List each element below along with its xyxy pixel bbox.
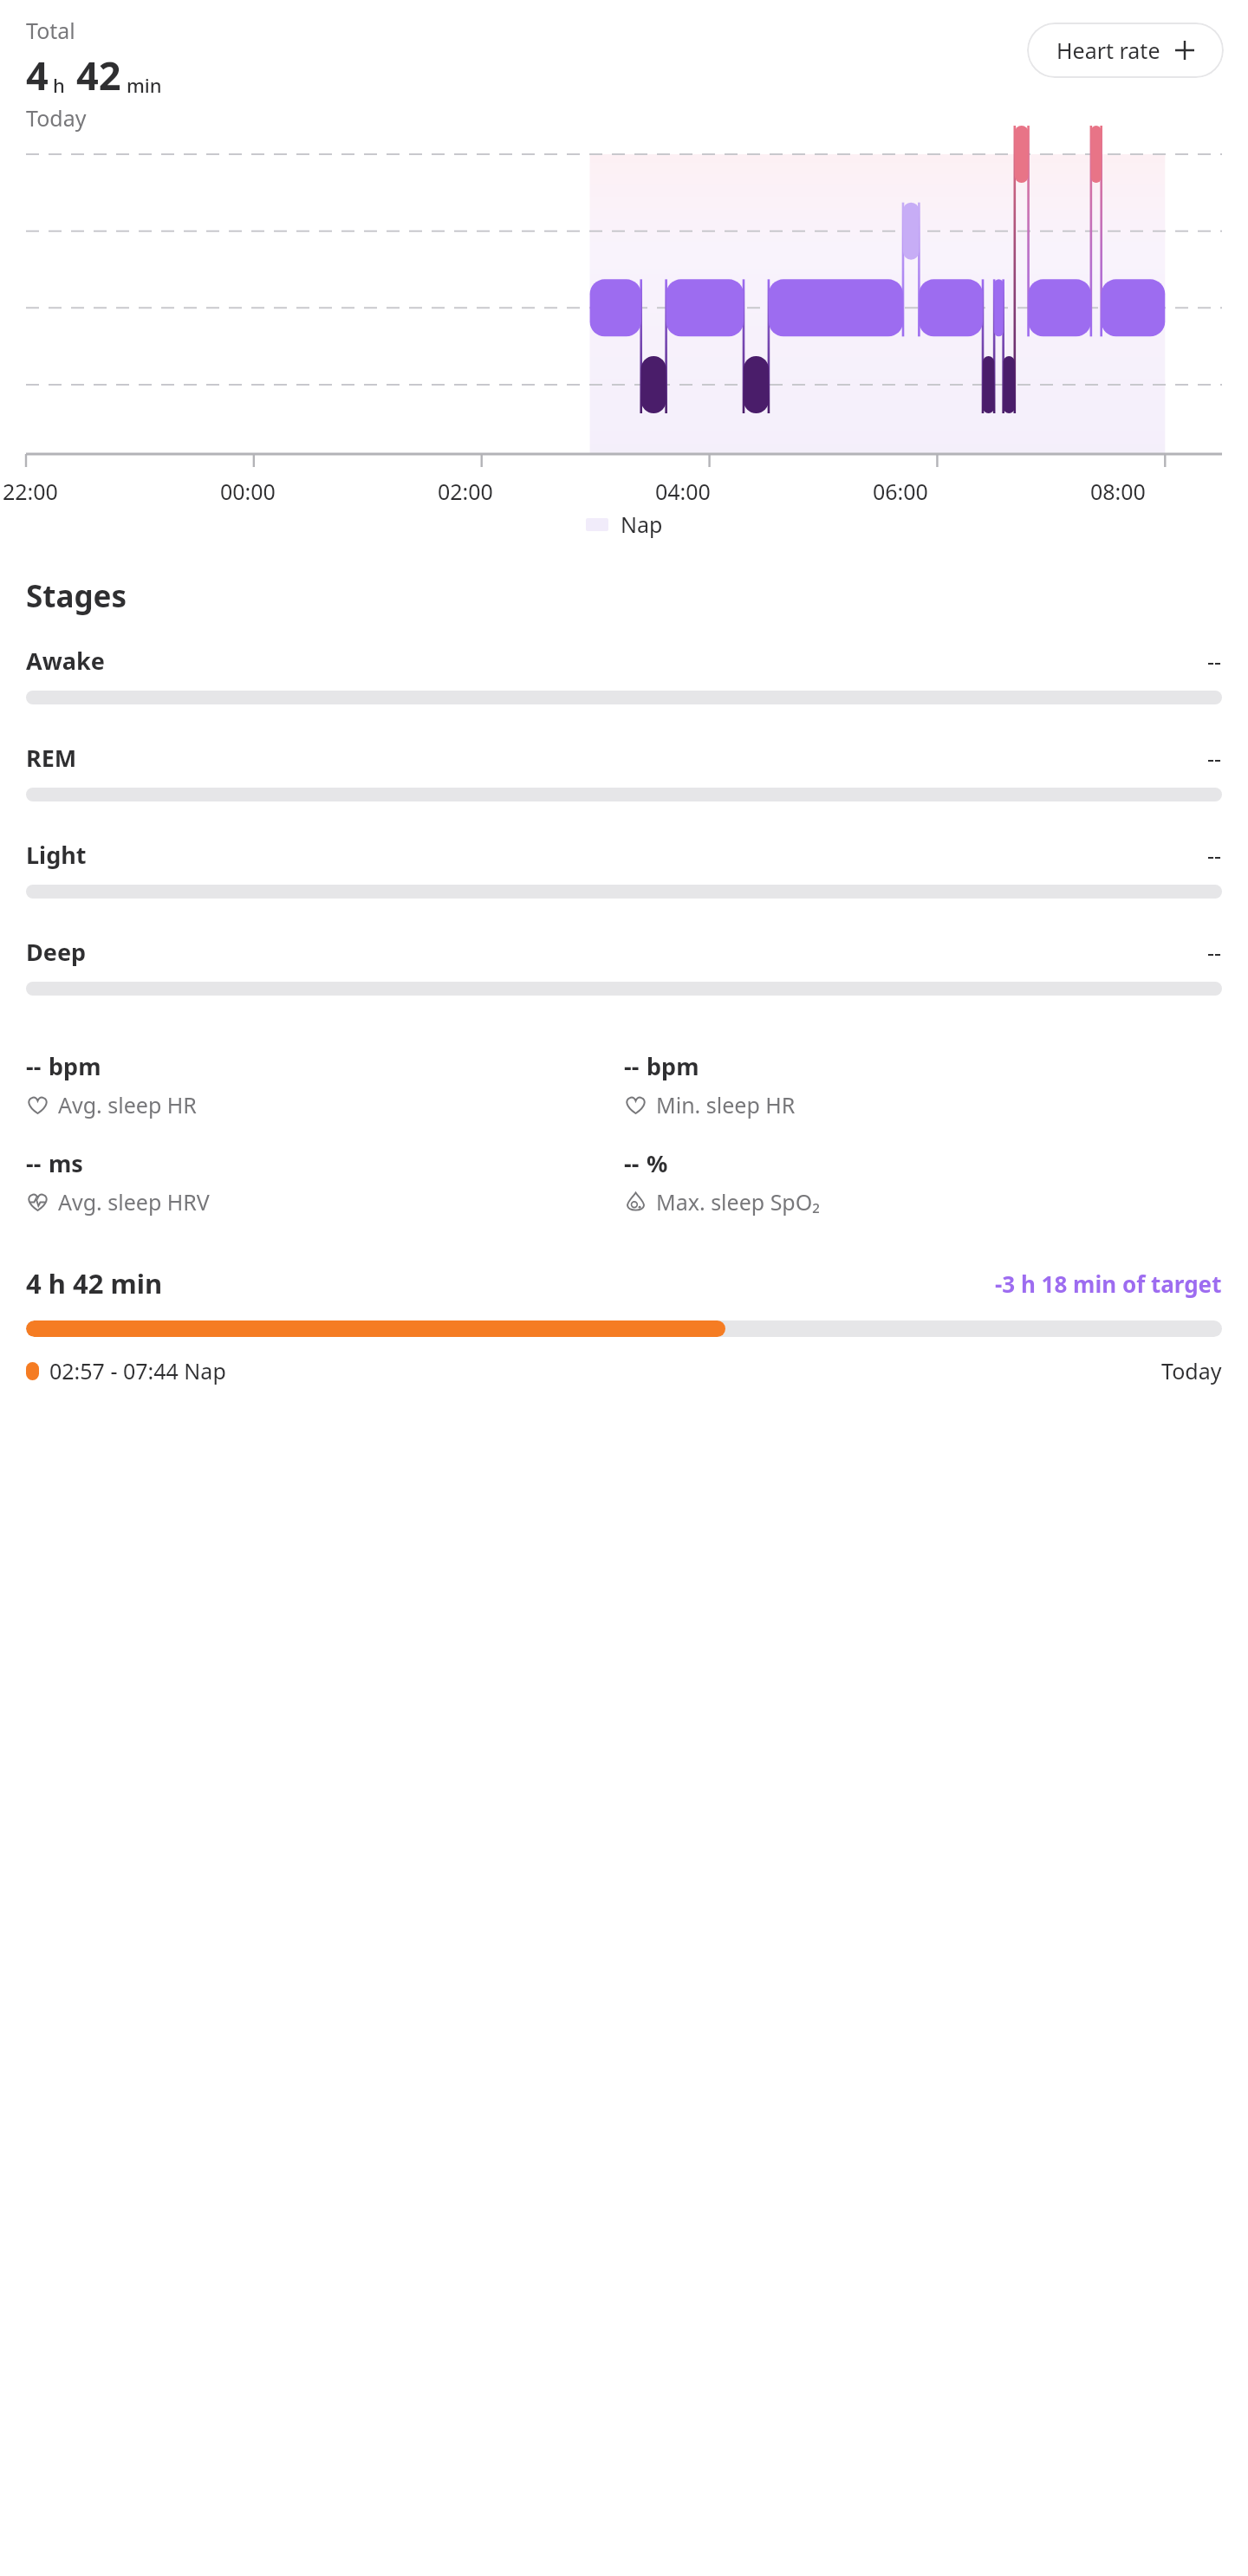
staticText: Min. sleep HR <box>656 1090 796 1119</box>
staticText: 00:00 <box>220 477 276 506</box>
staticText: 22:00 <box>3 477 58 506</box>
staticText: Light <box>26 839 1207 871</box>
staticText: bpm <box>647 1050 699 1082</box>
staticText: -- <box>1207 938 1222 967</box>
staticText: Today <box>1161 1356 1222 1385</box>
button[interactable]: Heart rate <box>1027 23 1224 78</box>
staticText: 02:57 - 07:44 Nap <box>49 1356 1161 1385</box>
button[interactable]: Light <box>0 839 1248 936</box>
button[interactable]: -- <box>26 1050 624 1119</box>
staticText: Deep <box>26 936 1207 968</box>
staticText: 42 <box>76 49 121 101</box>
staticText: min <box>127 72 162 98</box>
button[interactable]: -- <box>26 1147 624 1217</box>
staticText: h <box>53 72 65 98</box>
button[interactable]: -- <box>624 1050 1222 1119</box>
staticText: -- <box>26 1147 42 1179</box>
button[interactable]: Awake <box>0 645 1248 742</box>
staticText: Max. sleep SpO₂ <box>656 1187 821 1217</box>
staticText: -- <box>26 1050 42 1082</box>
staticText: 4 <box>26 49 49 101</box>
staticText: 08:00 <box>1090 477 1146 506</box>
staticText: Total <box>26 16 75 45</box>
staticText: -- <box>624 1147 640 1179</box>
staticText: -- <box>1207 646 1222 676</box>
staticText: Stages <box>26 575 127 617</box>
staticText: -- <box>1207 840 1222 870</box>
staticText: -- <box>624 1050 640 1082</box>
staticText: Avg. sleep HRV <box>58 1187 210 1217</box>
staticText: -- <box>1207 743 1222 773</box>
staticText: Awake <box>26 645 1207 677</box>
staticText: bpm <box>49 1050 101 1082</box>
button[interactable]: REM <box>0 742 1248 839</box>
other: Add heart rate <box>1175 41 1194 60</box>
staticText: Today <box>26 103 87 133</box>
staticText: REM <box>26 742 1207 774</box>
button[interactable]: -- <box>624 1147 1222 1217</box>
staticText: Nap <box>621 509 663 539</box>
staticText: 04:00 <box>655 477 711 506</box>
staticText: 02:00 <box>438 477 493 506</box>
staticText: % <box>647 1147 668 1179</box>
staticText: 4 h 42 min <box>26 1265 995 1301</box>
staticText: -3 h 18 min of target <box>995 1269 1222 1299</box>
button[interactable]: Deep <box>0 936 1248 1033</box>
staticText: Avg. sleep HR <box>58 1090 197 1119</box>
staticText: ms <box>49 1147 83 1179</box>
staticText: Heart rate <box>1056 36 1160 65</box>
button[interactable]: 4 h 42 min <box>0 1265 1248 1385</box>
staticText: 06:00 <box>873 477 928 506</box>
